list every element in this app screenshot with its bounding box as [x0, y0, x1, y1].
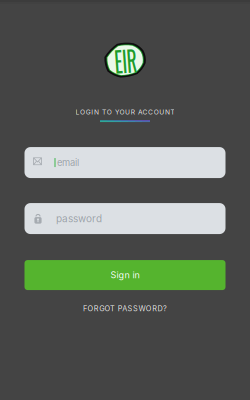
button[interactable]: FORGOT PASSWORD?: [80, 301, 170, 316]
button[interactable]: Sign in: [24, 260, 225, 290]
staticText: EIR: [111, 41, 140, 79]
staticText: FORGOT PASSWORD?: [83, 304, 167, 313]
staticText: Sign in: [110, 270, 139, 281]
staticText: password: [56, 212, 102, 225]
staticText: email: [57, 157, 79, 168]
button[interactable]: password: [24, 203, 225, 234]
staticText: LOGIN TO YOUR ACCOUNT: [75, 108, 174, 116]
button[interactable]: email: [24, 147, 225, 178]
